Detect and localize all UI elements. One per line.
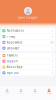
button[interactable]: About App xyxy=(1,64,55,70)
staticText: Appearance xyxy=(7,41,23,44)
button[interactable]: Payment xyxy=(1,53,55,58)
button[interactable]: Cards xyxy=(28,86,42,100)
staticText: Payment xyxy=(7,54,18,57)
button[interactable]: Privacy xyxy=(1,34,55,39)
staticText: Sign Out xyxy=(7,71,19,75)
staticText: About App xyxy=(7,65,23,69)
button[interactable]: Home xyxy=(0,86,14,100)
staticText: Notifications xyxy=(7,29,24,32)
staticText: Cards xyxy=(32,93,37,94)
button[interactable]: Appearance xyxy=(1,40,55,45)
button[interactable]: Profile xyxy=(42,86,56,100)
button[interactable]: Sign Out xyxy=(1,70,55,76)
staticText: Jane Cooper xyxy=(18,16,37,19)
button[interactable]: Support xyxy=(1,58,55,64)
staticText: Privacy xyxy=(7,35,15,38)
staticText: Language xyxy=(7,46,20,50)
button[interactable]: Search xyxy=(14,86,28,100)
staticText: Profile xyxy=(46,93,51,94)
button[interactable]: Notifications xyxy=(1,28,55,33)
button[interactable]: Language xyxy=(1,45,55,51)
staticText: Support xyxy=(7,59,18,63)
staticText: Home xyxy=(5,93,9,94)
